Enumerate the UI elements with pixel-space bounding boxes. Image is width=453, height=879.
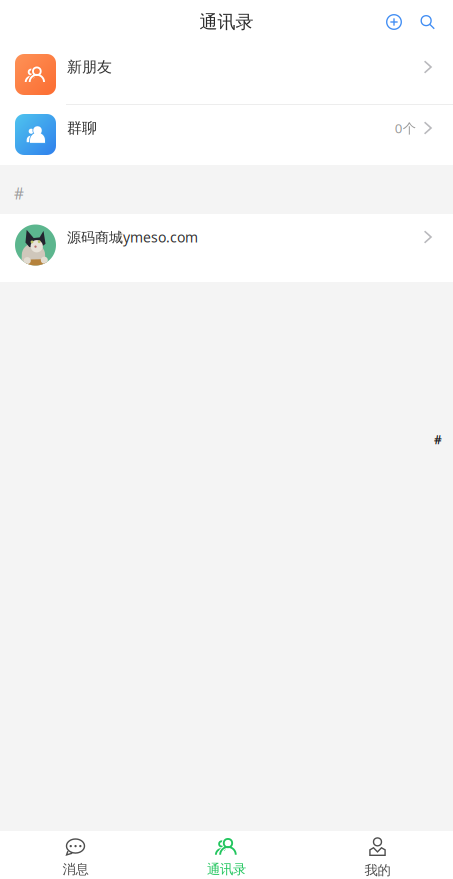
button[interactable]: 我的 [302, 831, 453, 879]
button[interactable]: 通讯录 [151, 831, 302, 879]
staticText: 我的 [364, 862, 390, 879]
staticText: 0个 [395, 119, 416, 137]
staticText: 新朋友 [67, 58, 112, 76]
button[interactable]: 群聊 [0, 105, 453, 165]
staticText: 通讯录 [207, 861, 246, 878]
staticText: 消息 [62, 861, 88, 878]
button[interactable]: Add [377, 0, 411, 44]
button[interactable]: 消息 [0, 831, 151, 879]
button[interactable]: 源码商城ymeso.com [0, 214, 453, 282]
staticText: 源码商城ymeso.com [67, 227, 198, 247]
staticText: # [434, 431, 442, 448]
staticText: 通讯录 [199, 11, 253, 33]
button[interactable]: Search [411, 0, 444, 44]
button[interactable]: 新朋友 [0, 44, 453, 104]
staticText: 群聊 [67, 119, 97, 137]
staticText: # [14, 183, 24, 204]
